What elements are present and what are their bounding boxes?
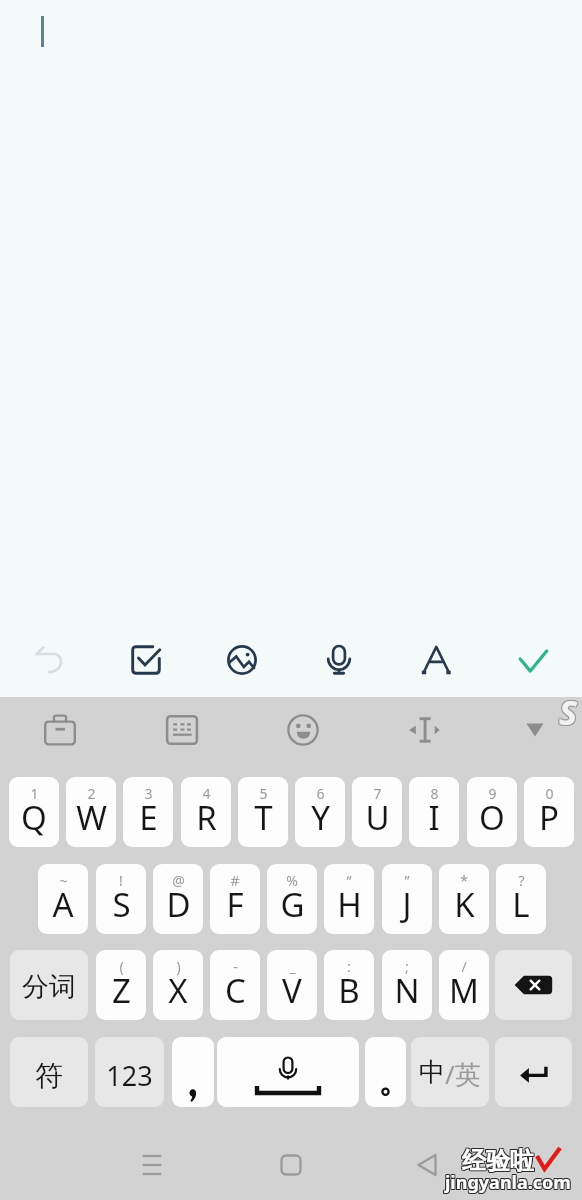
staticText: R [196, 795, 217, 840]
staticText: Z [112, 968, 131, 1013]
staticText: F [226, 882, 244, 927]
button[interactable]: ” [382, 864, 432, 934]
staticText: /英 [445, 1056, 481, 1092]
button[interactable]: Emoji [278, 705, 328, 755]
button[interactable]: % [267, 864, 317, 934]
button[interactable]: ! [96, 864, 146, 934]
staticText: 6 [316, 784, 325, 803]
button[interactable]: - [210, 950, 260, 1020]
button[interactable]: Period [365, 1037, 406, 1107]
button[interactable]: Keyboard layout [157, 705, 207, 755]
button[interactable]: 1 [9, 777, 59, 847]
staticText: “ [346, 871, 352, 890]
button[interactable]: Backspace [495, 950, 572, 1020]
staticText: jingyanla.com [444, 1170, 570, 1195]
button[interactable]: * [439, 864, 489, 934]
staticText: V [282, 968, 302, 1013]
staticText: 符 [35, 1058, 63, 1093]
button[interactable]: Hide keyboard [510, 705, 560, 755]
button[interactable]: ; [382, 950, 432, 1020]
button[interactable]: 分词 [10, 950, 88, 1020]
staticText: 7 [373, 784, 382, 803]
staticText: ” [404, 871, 410, 890]
button[interactable]: 0 [524, 777, 574, 847]
button[interactable]: _ [267, 950, 317, 1020]
button[interactable]: ( [96, 950, 146, 1020]
button[interactable]: 3 [123, 777, 173, 847]
button[interactable]: ? [496, 864, 546, 934]
staticText: 4 [202, 784, 211, 803]
staticText: Y [311, 795, 330, 840]
button[interactable]: Comma [172, 1037, 214, 1107]
button[interactable]: Enter [495, 1037, 572, 1107]
staticText: / [461, 957, 467, 976]
staticText: I [428, 795, 440, 840]
staticText: 123 [106, 1057, 153, 1094]
button[interactable]: Move cursor [400, 705, 450, 755]
button[interactable]: Recent apps [128, 1141, 176, 1189]
button[interactable]: Home [267, 1141, 315, 1189]
button[interactable]: ) [153, 950, 203, 1020]
staticText: * [460, 871, 468, 890]
button[interactable]: 中 [411, 1037, 489, 1107]
staticText: 1 [30, 784, 39, 803]
button[interactable]: “ [324, 864, 374, 934]
staticText: ) [176, 957, 181, 976]
staticText: 5 [259, 784, 268, 803]
button[interactable]: Undo [24, 636, 72, 684]
staticText: : [347, 957, 351, 976]
button[interactable]: 123 [95, 1037, 164, 1107]
staticText: 3 [144, 784, 153, 803]
button[interactable]: @ [153, 864, 203, 934]
button[interactable]: Clipboard [35, 708, 85, 758]
staticText: 经验啦 [463, 1145, 535, 1175]
staticText: P [539, 795, 559, 840]
staticText: Q [21, 795, 47, 840]
staticText: jingyanla.com [446, 1169, 572, 1194]
button[interactable]: / [439, 950, 489, 1020]
staticText: J [402, 882, 412, 927]
button[interactable]: 2 [66, 777, 116, 847]
button[interactable]: Text format [412, 636, 460, 684]
staticText: S [560, 688, 579, 734]
staticText: 经验啦 [461, 1145, 533, 1175]
staticText: O [479, 795, 505, 840]
button[interactable]: # [210, 864, 260, 934]
staticText: S [559, 690, 578, 736]
button[interactable]: Space [217, 1037, 359, 1107]
button[interactable]: Voice input [315, 636, 363, 684]
button[interactable]: 5 [238, 777, 288, 847]
staticText: 经验啦 [461, 1147, 533, 1177]
staticText: 经验啦 [463, 1147, 535, 1177]
staticText: 8 [430, 784, 439, 803]
staticText: T [254, 795, 273, 840]
button[interactable]: ~ [38, 864, 88, 934]
staticText: S [558, 690, 577, 736]
staticText: ! [119, 871, 123, 890]
button[interactable]: 符 [10, 1037, 88, 1107]
staticText: N [394, 968, 420, 1013]
staticText: 经验啦 [462, 1147, 534, 1177]
staticText: U [365, 795, 390, 840]
button[interactable]: Back [404, 1141, 452, 1189]
button[interactable]: : [324, 950, 374, 1020]
button[interactable]: 8 [409, 777, 459, 847]
staticText: 9 [488, 784, 497, 803]
staticText: D [166, 882, 191, 927]
staticText: 中 [419, 1056, 445, 1089]
button[interactable]: 6 [295, 777, 345, 847]
staticText: 2 [87, 784, 96, 803]
button[interactable]: 7 [352, 777, 402, 847]
button[interactable]: 4 [181, 777, 231, 847]
staticText: % [286, 871, 298, 890]
staticText: B [338, 968, 360, 1013]
button[interactable]: Insert image [218, 636, 266, 684]
button[interactable]: Checklist [122, 636, 170, 684]
staticText: 0 [545, 784, 554, 803]
staticText: jingyanla.com [445, 1169, 571, 1194]
staticText: ; [405, 957, 409, 976]
staticText: S [560, 689, 579, 735]
button[interactable]: Done [509, 636, 557, 684]
button[interactable]: 9 [467, 777, 517, 847]
staticText: jingyanla.com [446, 1170, 572, 1195]
